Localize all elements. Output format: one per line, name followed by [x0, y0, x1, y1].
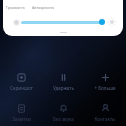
button[interactable]: Low brightness — [12, 18, 21, 27]
button[interactable]: Brightness slider — [21, 17, 107, 27]
button[interactable]: + Больше — [84, 73, 126, 91]
button[interactable]: Громкость — [5, 5, 26, 10]
button[interactable]: High brightness — [107, 17, 117, 27]
staticText: Автояркость — [32, 5, 55, 10]
button[interactable]: Скриншот — [0, 73, 42, 91]
staticText: Удержать — [53, 85, 74, 91]
staticText: Скриншот — [10, 85, 33, 91]
button[interactable]: Заметки — [0, 104, 42, 122]
staticText: Контакты — [94, 116, 116, 122]
staticText: + Больше — [94, 85, 116, 91]
button[interactable]: Контакты — [84, 104, 126, 122]
button[interactable]: Без звука — [42, 104, 84, 122]
button[interactable]: Удержать — [42, 73, 84, 91]
staticText: Заметки — [12, 116, 31, 122]
button[interactable]: Автояркость — [31, 5, 56, 10]
staticText: Громкость — [6, 5, 25, 10]
staticText: Без звука — [53, 116, 74, 122]
